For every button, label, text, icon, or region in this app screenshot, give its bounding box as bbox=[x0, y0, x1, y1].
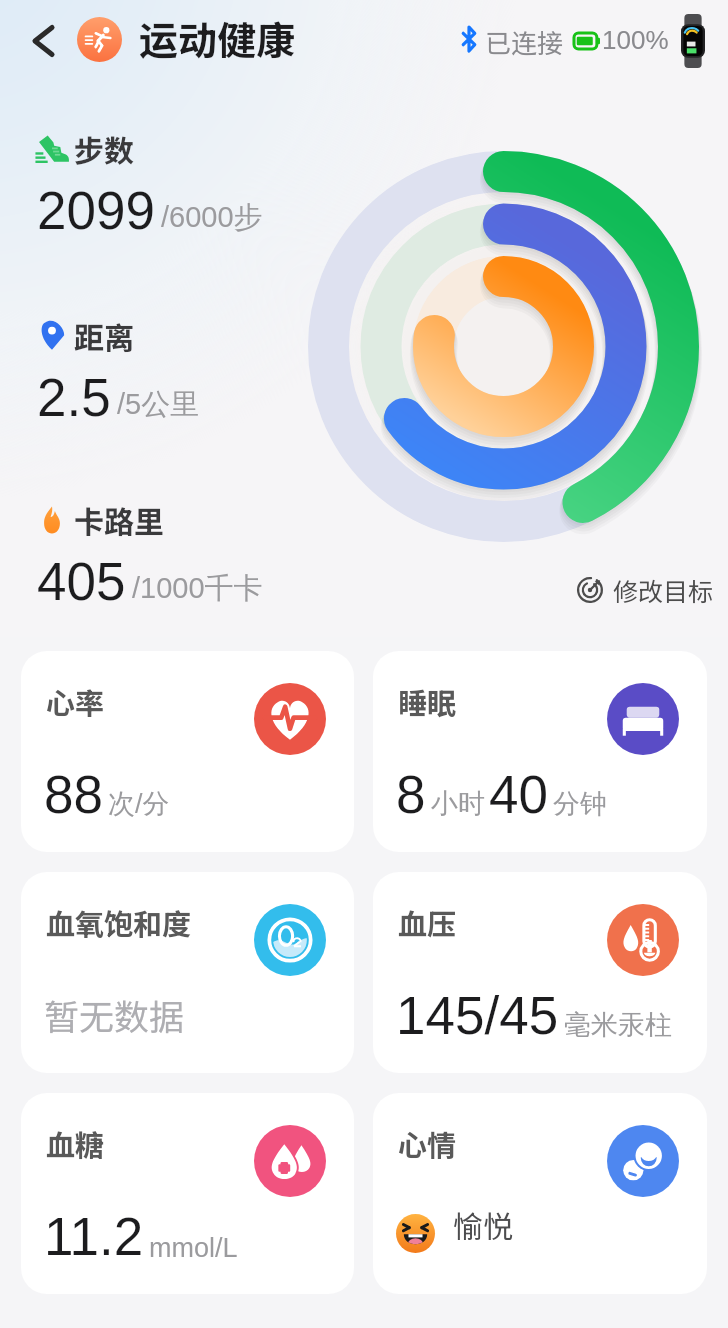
staticText: 已连接 bbox=[485, 23, 564, 61]
staticText: 睡眠 bbox=[398, 680, 457, 722]
staticText: 暂无数据 bbox=[44, 989, 185, 1040]
button[interactable]: 心情 bbox=[373, 1093, 707, 1294]
staticText: 小时 bbox=[431, 787, 485, 821]
button[interactable]: 血氧饱和度 bbox=[21, 872, 354, 1073]
staticText: 405 bbox=[37, 552, 126, 611]
staticText: 8 bbox=[396, 765, 426, 824]
staticText: 2.5 bbox=[37, 368, 111, 427]
button[interactable]: 血糖 bbox=[21, 1093, 354, 1294]
staticText: 卡路里 bbox=[74, 498, 164, 541]
button[interactable]: Back bbox=[20, 18, 66, 64]
staticText: 距离 bbox=[74, 314, 134, 357]
staticText: mmol/L bbox=[149, 1233, 238, 1263]
staticText: /6000步 bbox=[161, 199, 263, 236]
button[interactable]: 修改目标 bbox=[577, 572, 714, 608]
staticText: 心率 bbox=[46, 680, 105, 722]
staticText: 修改目标 bbox=[613, 572, 714, 608]
button[interactable]: Sport Health bbox=[77, 17, 122, 62]
staticText: 运动健康 bbox=[139, 10, 296, 66]
button[interactable]: 血压 bbox=[373, 872, 707, 1073]
staticText: 145/45 bbox=[396, 986, 559, 1045]
staticText: 11.2 bbox=[44, 1207, 144, 1266]
button[interactable]: 睡眠 bbox=[373, 651, 707, 852]
staticText: 40 bbox=[489, 765, 548, 824]
button[interactable]: 心率 bbox=[21, 651, 354, 852]
staticText: 愉悦 bbox=[453, 1203, 513, 1246]
staticText: 血氧饱和度 bbox=[46, 901, 192, 943]
staticText: 血糖 bbox=[46, 1122, 105, 1164]
staticText: 心情 bbox=[398, 1122, 457, 1164]
staticText: /5公里 bbox=[117, 386, 200, 423]
staticText: 毫米汞柱 bbox=[564, 1008, 672, 1042]
staticText: 血压 bbox=[398, 901, 457, 943]
staticText: 100% bbox=[602, 25, 669, 54]
staticText: /1000千卡 bbox=[132, 570, 263, 607]
staticText: 步数 bbox=[74, 127, 134, 170]
staticText: 次/分 bbox=[108, 787, 170, 821]
staticText: 分钟 bbox=[553, 787, 607, 821]
staticText: 2099 bbox=[37, 181, 155, 240]
staticText: 88 bbox=[44, 765, 103, 824]
other: Connected band bbox=[681, 14, 705, 68]
